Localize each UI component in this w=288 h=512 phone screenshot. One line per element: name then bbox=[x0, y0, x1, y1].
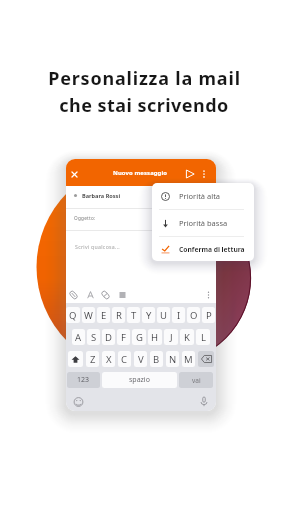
button[interactable]: J bbox=[164, 329, 178, 345]
button[interactable]: Conferma di lettura bbox=[152, 237, 254, 261]
staticText: D bbox=[105, 331, 112, 344]
staticText: Priorità alta bbox=[179, 191, 221, 201]
button[interactable]: U bbox=[157, 307, 170, 323]
staticText: K bbox=[184, 331, 190, 344]
staticText: Barbara Rossi bbox=[82, 192, 121, 200]
staticText: B bbox=[153, 353, 160, 366]
button[interactable]: N bbox=[166, 351, 179, 367]
staticText: I bbox=[177, 309, 181, 322]
staticText: spazio bbox=[129, 375, 150, 385]
staticText: X bbox=[106, 353, 112, 366]
staticText: L bbox=[201, 331, 206, 344]
button[interactable]: G bbox=[132, 329, 146, 345]
button[interactable]: D bbox=[102, 329, 115, 345]
staticText: F bbox=[121, 331, 126, 344]
button[interactable]: O bbox=[187, 307, 200, 323]
staticText: Y bbox=[146, 309, 152, 322]
staticText: U bbox=[160, 309, 167, 322]
staticText: W bbox=[84, 309, 93, 322]
staticText: Nuovo messaggio bbox=[113, 169, 168, 177]
staticText: Conferma di lettura bbox=[179, 245, 245, 254]
button[interactable]: P bbox=[202, 307, 215, 323]
button[interactable]: spazio bbox=[102, 372, 177, 388]
staticText: O bbox=[190, 309, 198, 322]
staticText: E bbox=[101, 309, 107, 322]
staticText: V bbox=[138, 353, 144, 366]
staticText: G bbox=[136, 331, 143, 344]
button[interactable]: A bbox=[72, 329, 85, 345]
button[interactable]: K bbox=[180, 329, 194, 345]
button[interactable]: R bbox=[112, 307, 125, 323]
staticText: Oggetto: bbox=[74, 215, 96, 221]
button[interactable]: X bbox=[102, 351, 115, 367]
button[interactable]: H bbox=[148, 329, 162, 345]
button[interactable]: Altre opzioni bbox=[199, 169, 209, 179]
button[interactable]: E bbox=[97, 307, 110, 323]
button[interactable] bbox=[198, 351, 214, 367]
staticText: Personalizza la mail bbox=[48, 66, 241, 91]
button[interactable]: I bbox=[172, 307, 185, 323]
staticText: Q bbox=[69, 309, 77, 322]
staticText: vai bbox=[192, 376, 201, 385]
staticText: Z bbox=[90, 353, 96, 366]
staticText: che stai scrivendo bbox=[59, 93, 229, 118]
button[interactable]: F bbox=[117, 329, 130, 345]
button[interactable]: T bbox=[127, 307, 140, 323]
button[interactable]: Z bbox=[86, 351, 99, 367]
button[interactable]: M bbox=[182, 351, 195, 367]
staticText: Priorità bassa bbox=[179, 218, 228, 228]
staticText: T bbox=[131, 309, 137, 322]
staticText: S bbox=[91, 331, 97, 344]
button[interactable]: vai bbox=[179, 372, 213, 388]
staticText: Scrivi qualcosa... bbox=[75, 243, 121, 250]
button[interactable]: S bbox=[87, 329, 100, 345]
button[interactable]: Chiudi bbox=[69, 169, 80, 180]
button[interactable]: B bbox=[150, 351, 163, 367]
staticText: A bbox=[75, 331, 82, 344]
button[interactable]: Q bbox=[66, 307, 80, 323]
button[interactable]: Invia bbox=[185, 169, 195, 179]
staticText: N bbox=[169, 353, 177, 366]
staticText: J bbox=[170, 331, 173, 344]
button[interactable]: 123 bbox=[67, 372, 100, 388]
button[interactable]: V bbox=[134, 351, 147, 367]
staticText: H bbox=[151, 331, 159, 344]
button[interactable]: Priorità bassa bbox=[152, 210, 254, 236]
staticText: P bbox=[206, 309, 212, 322]
staticText: 123 bbox=[77, 375, 90, 385]
staticText: C bbox=[121, 353, 128, 366]
button[interactable]: Priorità alta bbox=[152, 183, 254, 209]
button[interactable]: C bbox=[118, 351, 131, 367]
staticText: R bbox=[116, 309, 122, 322]
button[interactable]: Y bbox=[142, 307, 155, 323]
button[interactable]: W bbox=[82, 307, 95, 323]
staticText: M bbox=[184, 353, 193, 366]
button[interactable]: L bbox=[196, 329, 210, 345]
button[interactable] bbox=[68, 351, 83, 367]
